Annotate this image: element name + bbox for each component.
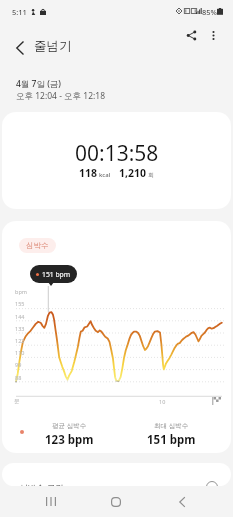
staticText: 151 bpm xyxy=(42,270,71,279)
button[interactable]: Back xyxy=(167,487,196,516)
staticText: 118 xyxy=(79,166,98,180)
staticText: 151 bpm xyxy=(147,432,196,448)
staticText: 분 xyxy=(14,398,20,405)
staticText: 155 xyxy=(15,300,25,307)
staticText: 1,210 xyxy=(119,166,147,180)
staticText: 110 xyxy=(15,349,25,356)
staticText: 오후 12:04 - 오후 12:18 xyxy=(16,90,106,102)
staticText: 회 xyxy=(148,171,154,179)
staticText: kcal xyxy=(99,171,111,179)
staticText: 144 xyxy=(15,313,25,320)
staticText: 00:13:58 xyxy=(75,139,159,168)
staticText: bpm xyxy=(15,288,27,295)
staticText: 줄넘기 xyxy=(34,38,72,54)
button[interactable]: 심박수 구간 xyxy=(2,463,231,486)
button[interactable]: 00:13:58 xyxy=(2,112,231,209)
staticText: 10 xyxy=(159,398,166,405)
staticText: 123 bpm xyxy=(45,432,94,448)
staticText: 5:11 xyxy=(12,7,27,17)
button[interactable]: Recents xyxy=(36,487,65,516)
staticText: 122 xyxy=(15,337,25,344)
button[interactable]: Home xyxy=(101,487,130,516)
button[interactable]: 심박수 xyxy=(2,221,231,453)
staticText: 최대 심박수 xyxy=(154,421,189,430)
staticText: 4월 7일 (금) xyxy=(16,78,61,90)
staticText: 85% xyxy=(202,7,217,17)
staticText: 평균 심박수 xyxy=(52,421,87,430)
staticText: 88 xyxy=(15,374,22,381)
staticText: 심박수 xyxy=(26,241,49,250)
staticText: 심박수 구간 xyxy=(19,482,64,486)
staticText: 99 xyxy=(15,361,22,368)
button[interactable]: More options xyxy=(202,24,224,46)
button[interactable]: Back xyxy=(8,36,31,59)
staticText: 133 xyxy=(15,325,25,332)
button[interactable]: Share xyxy=(180,24,202,46)
